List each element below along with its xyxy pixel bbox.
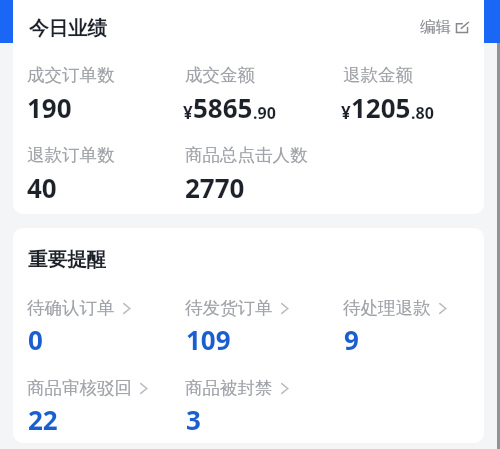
staticText: 待确认订单 (27, 297, 115, 319)
staticText: 22 (28, 402, 58, 437)
staticText: 商品被封禁 (185, 377, 273, 399)
staticText: 1205 (351, 90, 411, 125)
button[interactable]: 待处理退款 (343, 297, 447, 319)
staticText: 0 (28, 322, 43, 357)
button[interactable]: 成交金额 (185, 64, 255, 86)
staticText: 编辑 (420, 17, 451, 37)
button[interactable]: 成交订单数 (27, 64, 115, 86)
staticText: 退款金额 (343, 64, 413, 86)
staticText: 成交金额 (185, 64, 255, 86)
staticText: 190 (27, 90, 72, 125)
other: 编辑 (456, 22, 468, 33)
button[interactable]: 商品总点击人数 (185, 144, 308, 166)
staticText: 109 (186, 322, 231, 357)
staticText: 5865 (193, 90, 253, 125)
staticText: 退款订单数 (27, 144, 115, 166)
button[interactable]: 重要提醒 (28, 247, 106, 272)
staticText: 2770 (185, 170, 245, 205)
button[interactable]: 待发货订单 (185, 297, 289, 319)
staticText: .90 (253, 102, 276, 124)
staticText: 今日业绩 (29, 16, 107, 41)
button[interactable]: 退款金额 (343, 64, 413, 86)
staticText: 9 (344, 322, 359, 357)
staticText: 40 (27, 170, 57, 205)
button[interactable]: 编辑 (420, 17, 468, 37)
button[interactable]: 商品审核驳回 (27, 377, 148, 399)
button[interactable]: 今日业绩 (29, 16, 107, 41)
staticText: 商品总点击人数 (185, 144, 308, 166)
staticText: 商品审核驳回 (27, 377, 132, 399)
staticText: ¥ (183, 101, 193, 124)
staticText: .80 (411, 102, 434, 124)
staticText: 成交订单数 (27, 64, 115, 86)
staticText: ¥ (341, 101, 351, 124)
staticText: 待处理退款 (343, 297, 431, 319)
button[interactable]: 待确认订单 (27, 297, 131, 319)
staticText: 3 (186, 402, 201, 437)
button[interactable]: 退款订单数 (27, 144, 115, 166)
staticText: 重要提醒 (28, 247, 106, 272)
staticText: 待发货订单 (185, 297, 273, 319)
button[interactable]: 商品被封禁 (185, 377, 289, 399)
